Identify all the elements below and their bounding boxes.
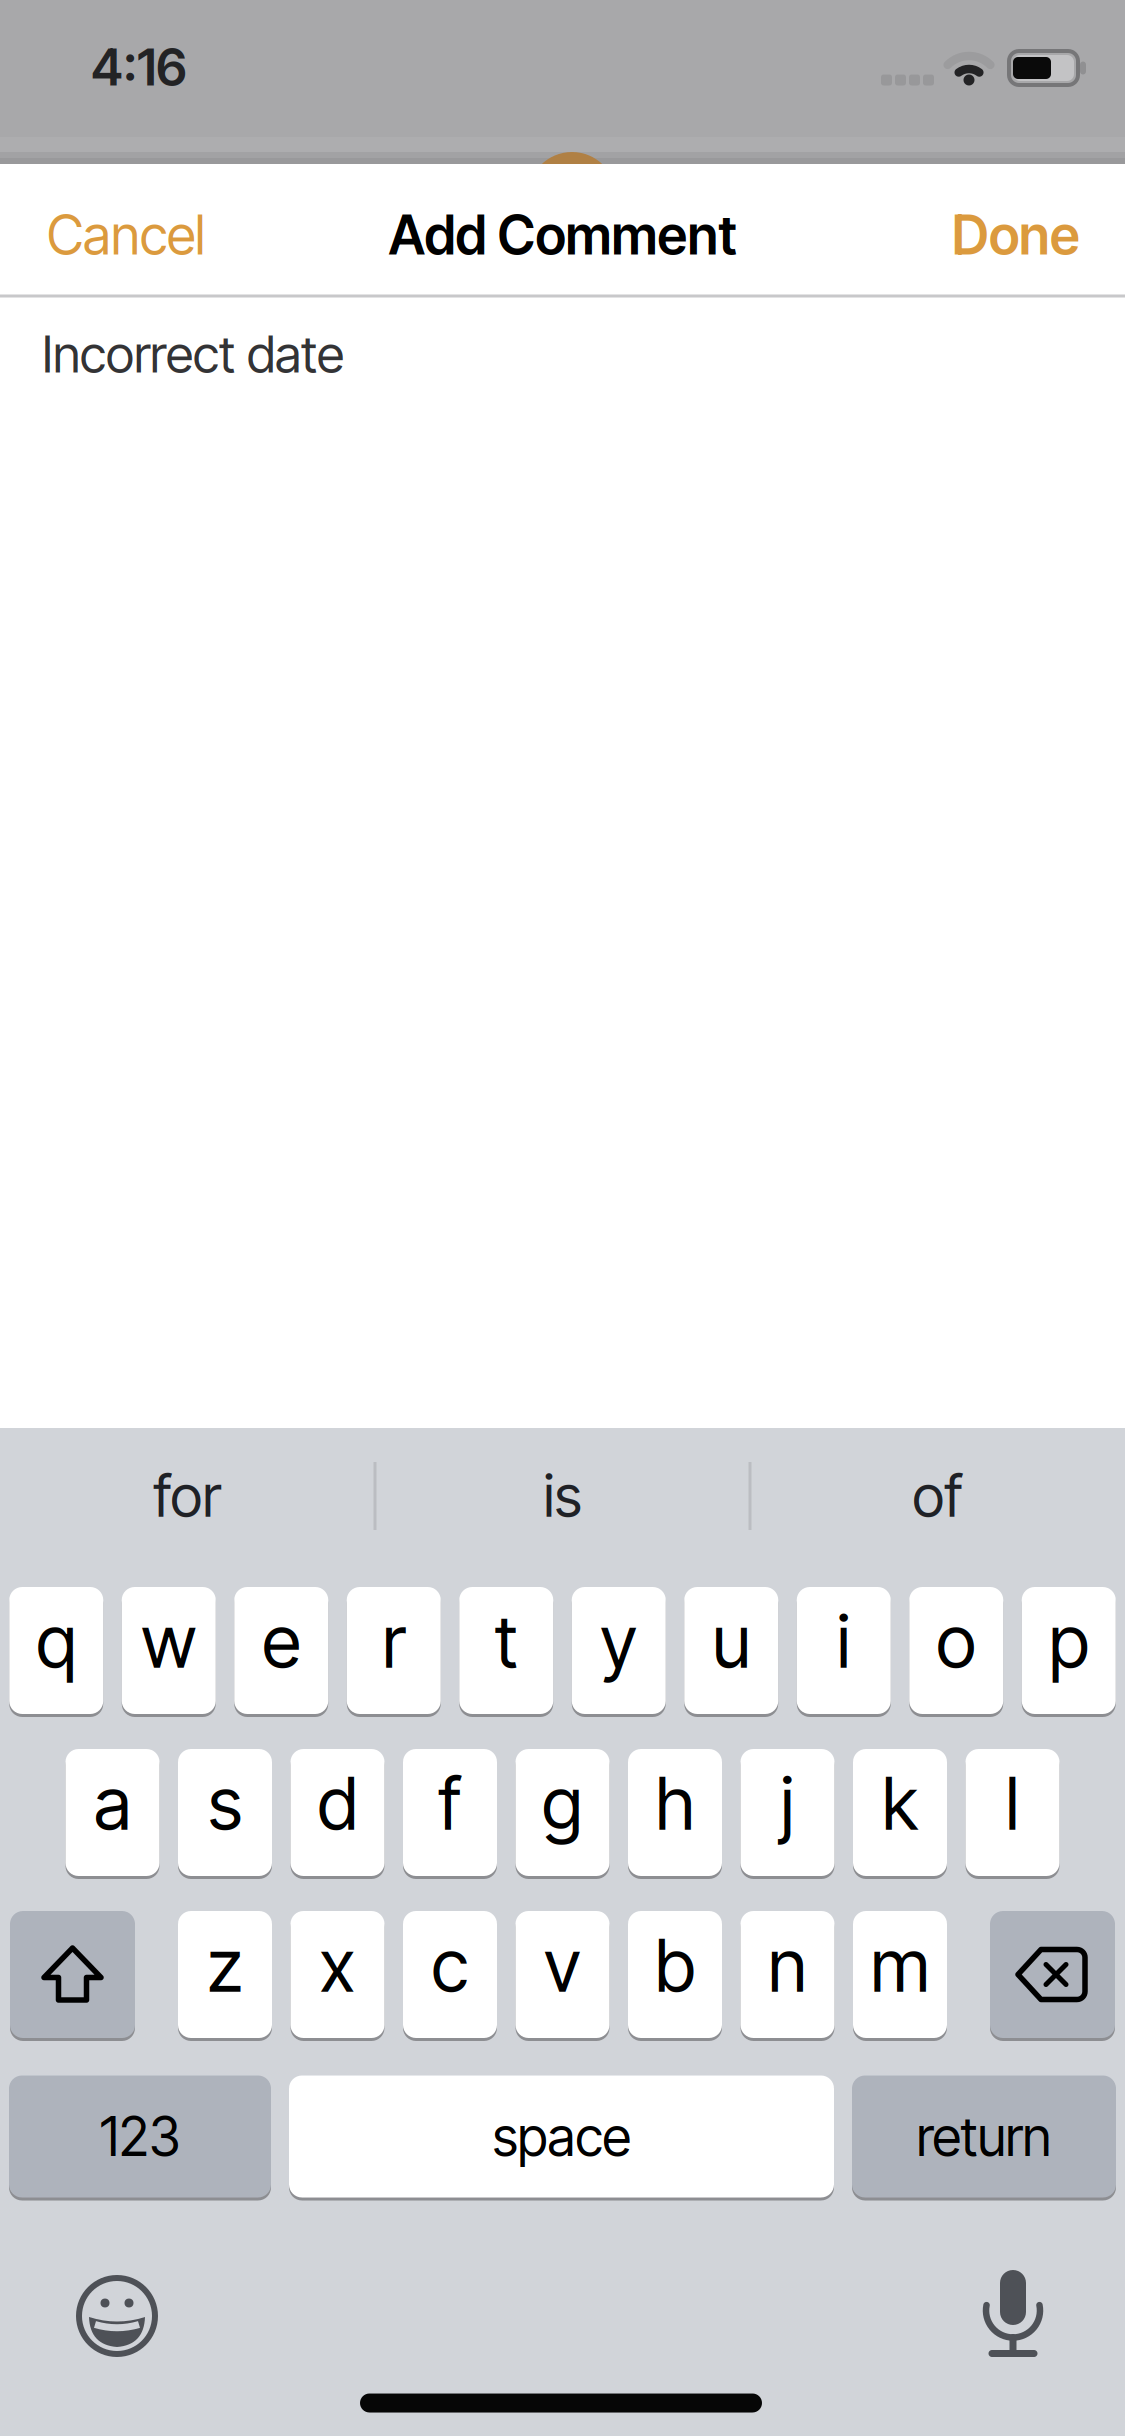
staticText: of: [912, 1461, 962, 1531]
staticText: Add Comment: [388, 203, 736, 267]
button[interactable]: s: [178, 1749, 272, 1876]
button[interactable]: of: [912, 1461, 962, 1531]
button[interactable]: c: [403, 1911, 497, 2038]
button[interactable]: u: [684, 1587, 778, 1714]
button[interactable]: q: [9, 1587, 103, 1714]
staticText: t: [495, 1598, 518, 1685]
button[interactable]: j: [740, 1749, 834, 1876]
staticText: is: [543, 1461, 581, 1531]
button[interactable]: k: [853, 1749, 947, 1876]
button[interactable]: i: [797, 1587, 891, 1714]
button[interactable]: t: [459, 1587, 553, 1714]
staticText: n: [768, 1922, 807, 2009]
button[interactable]: d: [290, 1749, 384, 1876]
button[interactable]: w: [122, 1587, 216, 1714]
button[interactable]: Cancel: [47, 203, 205, 267]
staticText: o: [936, 1598, 976, 1685]
button[interactable]: r: [347, 1587, 441, 1714]
button[interactable]: p: [1022, 1587, 1116, 1714]
staticText: s: [208, 1760, 242, 1847]
staticText: k: [882, 1760, 918, 1847]
staticText: v: [544, 1922, 581, 2009]
button[interactable]: e: [234, 1587, 328, 1714]
button[interactable]: a: [65, 1749, 159, 1876]
staticText: g: [542, 1760, 583, 1847]
staticText: z: [207, 1922, 243, 2009]
staticText: space: [492, 2104, 630, 2169]
staticText: f: [438, 1760, 461, 1847]
staticText: q: [36, 1598, 76, 1685]
button[interactable]: o: [909, 1587, 1003, 1714]
button[interactable]: l: [965, 1749, 1059, 1876]
staticText: x: [319, 1922, 355, 2009]
button[interactable]: n: [740, 1911, 834, 2038]
staticText: i: [837, 1598, 851, 1685]
staticText: e: [262, 1598, 300, 1685]
button[interactable]: for: [153, 1461, 221, 1531]
staticText: y: [600, 1598, 637, 1685]
staticText: r: [382, 1598, 405, 1685]
button[interactable]: y: [572, 1587, 666, 1714]
button[interactable]: Delete: [990, 1911, 1115, 2038]
staticText: Done: [952, 203, 1080, 267]
button[interactable]: Dictate: [963, 2265, 1063, 2360]
staticText: c: [431, 1922, 468, 2009]
button[interactable]: space: [289, 2075, 834, 2197]
staticText: Cancel: [47, 203, 205, 267]
button[interactable]: 123: [9, 2075, 271, 2197]
staticText: w: [141, 1598, 196, 1685]
button[interactable]: is: [543, 1461, 581, 1531]
button[interactable]: g: [515, 1749, 609, 1876]
staticText: m: [870, 1922, 929, 2009]
button[interactable]: Emoji: [72, 2271, 162, 2361]
button[interactable]: Shift: [10, 1911, 135, 2038]
staticText: l: [1005, 1760, 1019, 1847]
button[interactable]: b: [628, 1911, 722, 2038]
button[interactable]: m: [853, 1911, 947, 2038]
button[interactable]: h: [628, 1749, 722, 1876]
button[interactable]: f: [403, 1749, 497, 1876]
staticText: 4:16: [91, 36, 187, 98]
staticText: Incorrect date: [42, 323, 344, 385]
button[interactable]: x: [290, 1911, 384, 2038]
staticText: for: [153, 1461, 221, 1531]
staticText: a: [94, 1760, 131, 1847]
staticText: d: [317, 1760, 357, 1847]
staticText: u: [712, 1598, 750, 1685]
button[interactable]: z: [178, 1911, 272, 2038]
staticText: p: [1049, 1598, 1089, 1685]
staticText: 123: [100, 2104, 180, 2169]
button[interactable]: return: [852, 2075, 1116, 2197]
button[interactable]: Done: [952, 203, 1080, 267]
staticText: j: [780, 1760, 794, 1847]
staticText: b: [655, 1922, 695, 2009]
button[interactable]: v: [515, 1911, 609, 2038]
staticText: return: [916, 2104, 1051, 2169]
staticText: h: [655, 1760, 694, 1847]
